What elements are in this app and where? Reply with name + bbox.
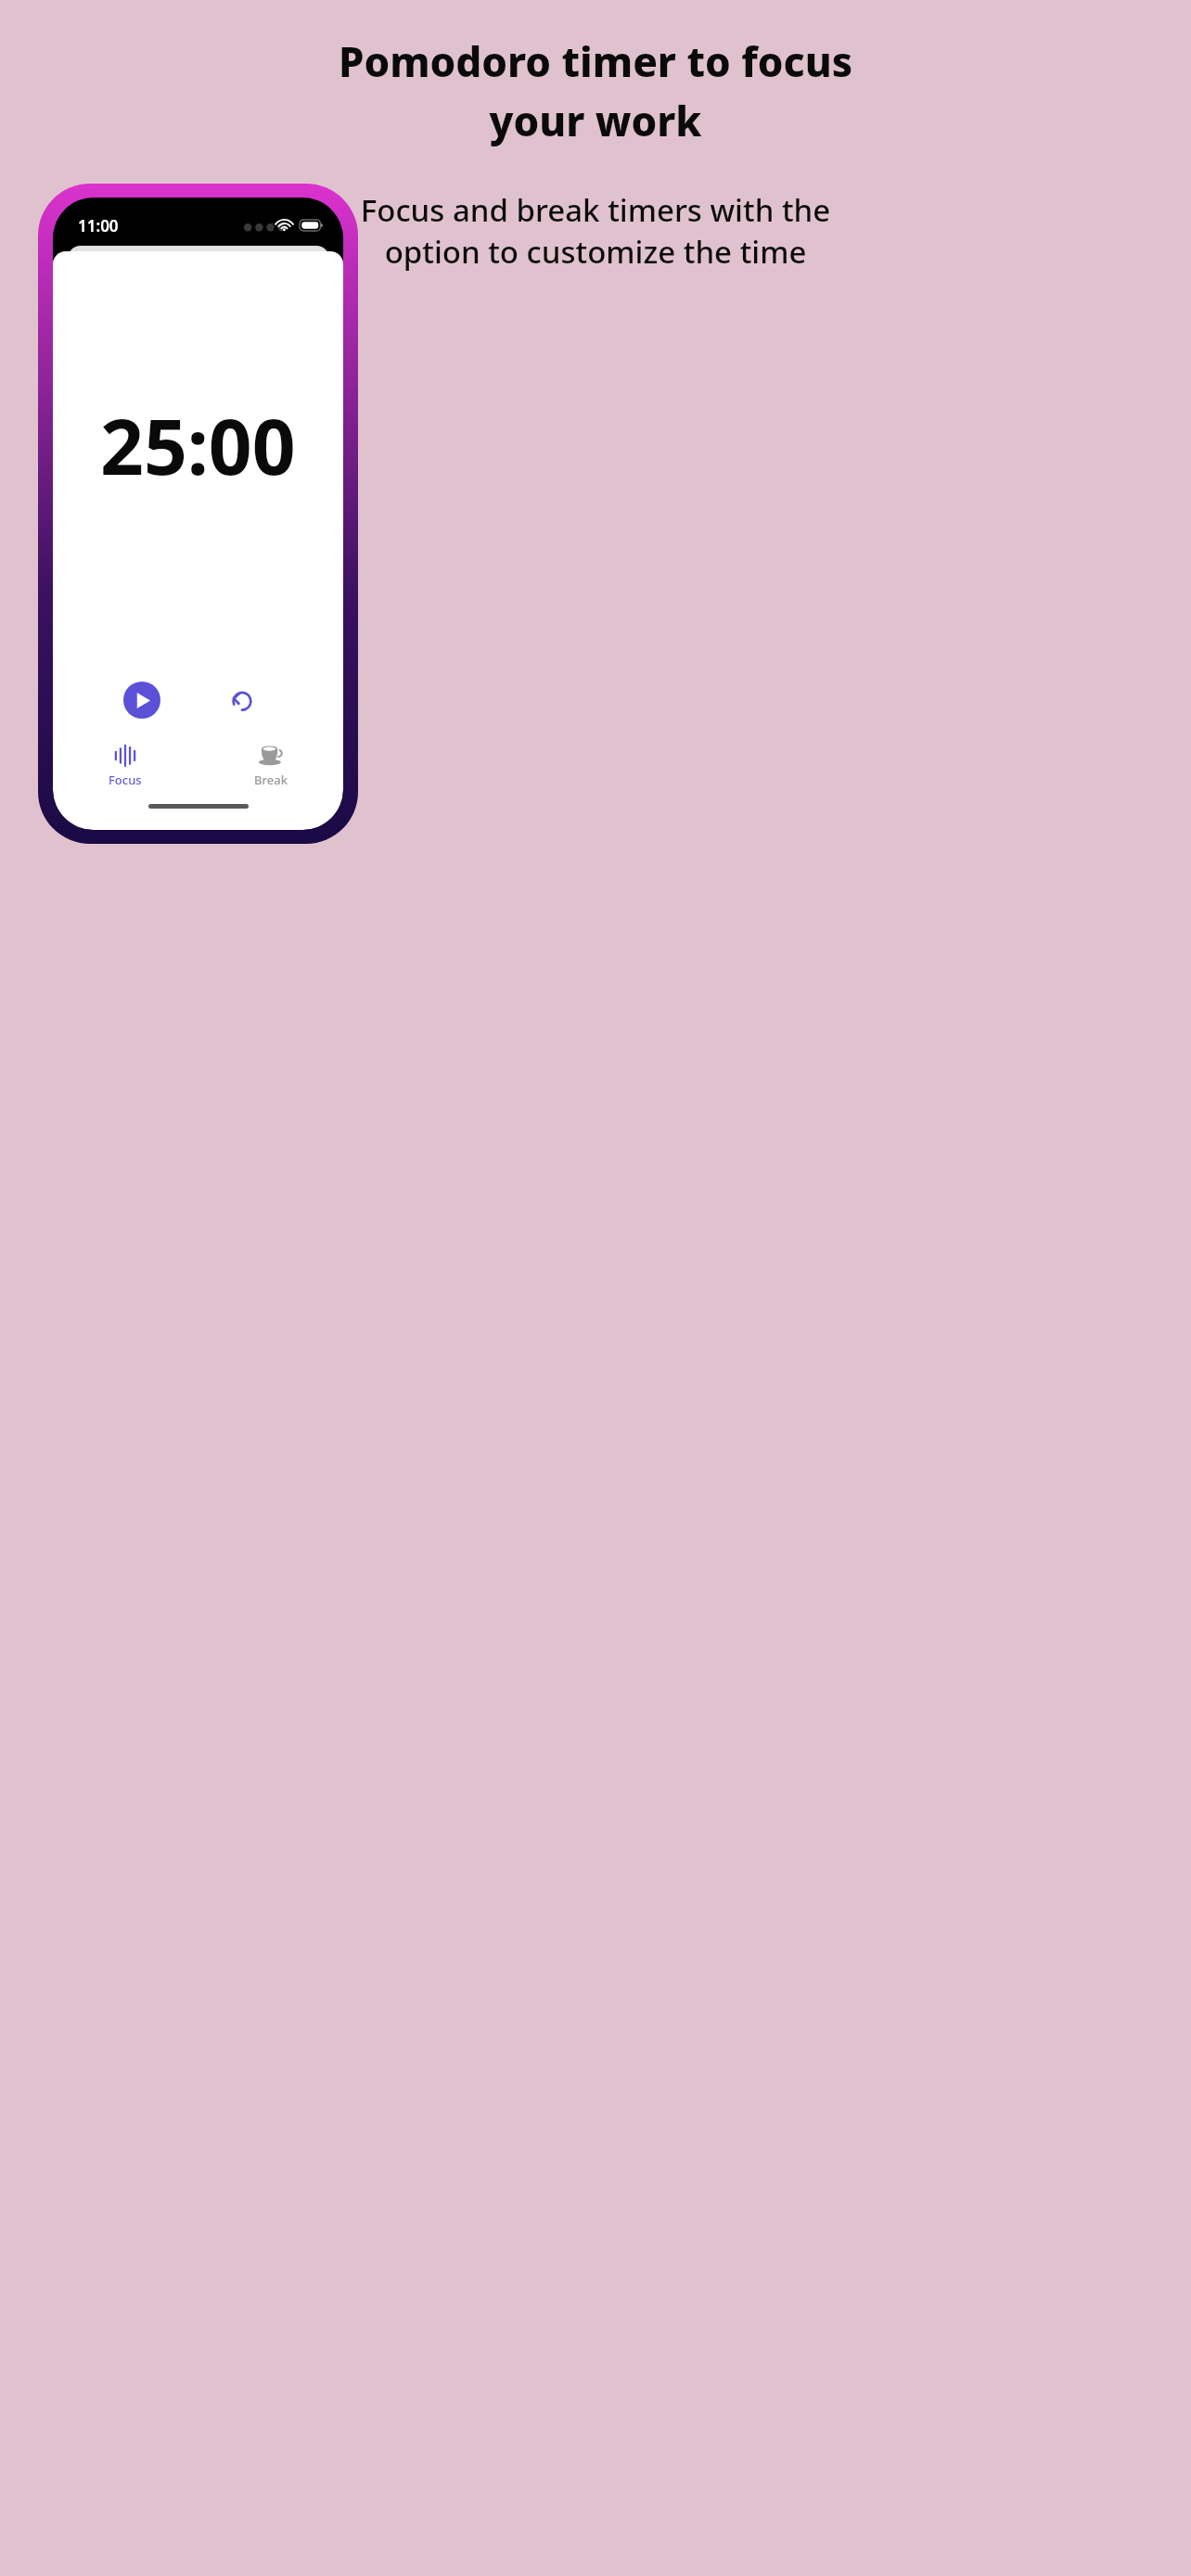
staticText: 25:00 bbox=[100, 393, 296, 497]
staticText: Pomodoro timer to focus your work bbox=[22, 33, 1169, 148]
button[interactable]: Break bbox=[198, 735, 343, 793]
button[interactable]: Reset timer bbox=[224, 682, 261, 719]
staticText: Focus and break timers with the option t… bbox=[22, 189, 1169, 272]
button[interactable]: Focus bbox=[53, 735, 198, 793]
button[interactable]: Start timer bbox=[123, 682, 160, 719]
staticText: Break bbox=[254, 772, 288, 788]
staticText: 11:00 bbox=[78, 215, 119, 236]
staticText: Focus bbox=[109, 772, 142, 788]
